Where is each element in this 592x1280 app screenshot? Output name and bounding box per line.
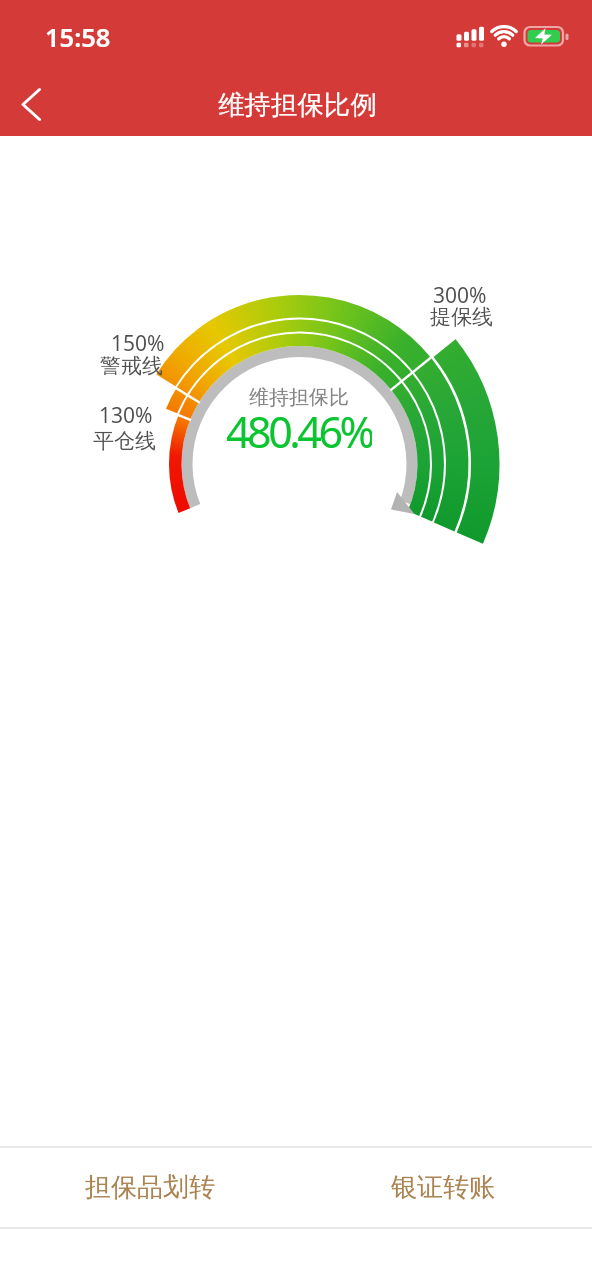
staticText: 银证转账 bbox=[391, 1171, 495, 1204]
staticText: 维持担保比 bbox=[249, 385, 349, 410]
button[interactable] bbox=[6, 78, 58, 130]
button[interactable]: 银证转账 bbox=[333, 1162, 553, 1212]
staticText: 提保线 bbox=[430, 304, 493, 330]
staticText: 警戒线 bbox=[100, 353, 163, 379]
staticText: 480.46% bbox=[226, 402, 372, 452]
staticText: 担保品划转 bbox=[85, 1171, 215, 1204]
staticText: 300% bbox=[433, 281, 487, 310]
staticText: 15:58 bbox=[45, 20, 111, 55]
staticText: 130% bbox=[99, 401, 153, 430]
staticText: 平仓线 bbox=[93, 428, 156, 454]
button[interactable]: 担保品划转 bbox=[40, 1162, 260, 1212]
staticText: 维持担保比例 bbox=[218, 88, 377, 121]
staticText: 150% bbox=[111, 329, 165, 358]
